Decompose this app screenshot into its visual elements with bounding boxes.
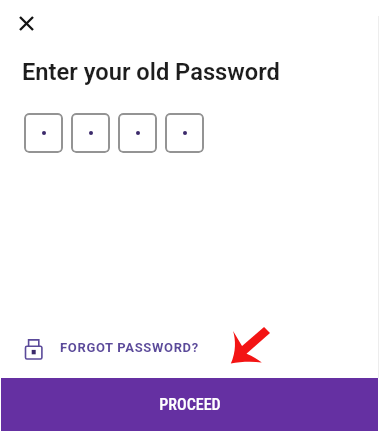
button[interactable]: Password digit — [118, 113, 157, 153]
button[interactable]: Close — [12, 9, 40, 37]
staticText: Enter your old Password — [22, 58, 280, 86]
button[interactable]: PROCEED — [1, 378, 378, 431]
button[interactable]: Password digit — [24, 113, 63, 153]
other: Annotation arrow — [229, 327, 270, 365]
staticText: PROCEED — [159, 395, 221, 414]
button[interactable]: FORGOT PASSWORD? — [24, 336, 199, 358]
staticText: FORGOT PASSWORD? — [60, 340, 199, 355]
button[interactable]: Password digit — [71, 113, 110, 153]
button[interactable]: Password digit — [165, 113, 204, 153]
